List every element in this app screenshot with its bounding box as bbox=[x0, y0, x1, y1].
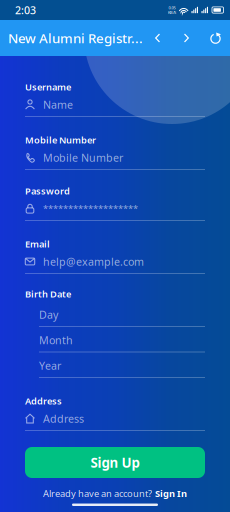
staticText: Mobile Number bbox=[25, 134, 96, 146]
staticText: Password bbox=[25, 185, 70, 197]
staticText: Month bbox=[39, 333, 73, 347]
button[interactable]: Password bbox=[25, 170, 205, 221]
button[interactable]: Month bbox=[39, 333, 205, 352]
button[interactable]: Sign Up bbox=[25, 447, 205, 478]
button[interactable]: Day bbox=[39, 308, 205, 327]
staticText: Sign Up bbox=[90, 454, 139, 471]
button[interactable]: Username bbox=[25, 56, 205, 117]
staticText: 2:03 bbox=[15, 3, 36, 17]
button[interactable]: Forward bbox=[172, 20, 201, 56]
staticText: KB/S bbox=[168, 10, 176, 15]
staticText: Address bbox=[43, 411, 84, 426]
staticText: Sign In bbox=[155, 487, 187, 500]
button[interactable]: Refresh bbox=[201, 20, 230, 56]
staticText: Email bbox=[25, 238, 50, 250]
staticText: Birth Date bbox=[25, 288, 71, 300]
staticText: Day bbox=[39, 307, 58, 322]
staticText: Year bbox=[39, 358, 61, 373]
button[interactable]: Address bbox=[25, 378, 205, 431]
button[interactable]: Mobile Number bbox=[25, 117, 205, 170]
button[interactable]: Year bbox=[39, 359, 205, 378]
staticText: ******************* bbox=[43, 202, 138, 215]
staticText: help@example.com bbox=[43, 254, 144, 269]
staticText: Username bbox=[25, 81, 71, 93]
staticText: Address bbox=[25, 395, 62, 407]
staticText: New Alumni Registr... bbox=[8, 29, 143, 47]
button[interactable]: Already have an account? bbox=[25, 487, 205, 500]
button[interactable]: Email bbox=[25, 221, 205, 274]
staticText: 0.05 bbox=[168, 5, 175, 10]
staticText: Name bbox=[43, 97, 73, 112]
staticText: Mobile Number bbox=[43, 150, 123, 165]
staticText: Already have an account? bbox=[43, 487, 152, 500]
button[interactable]: Back bbox=[143, 20, 172, 56]
